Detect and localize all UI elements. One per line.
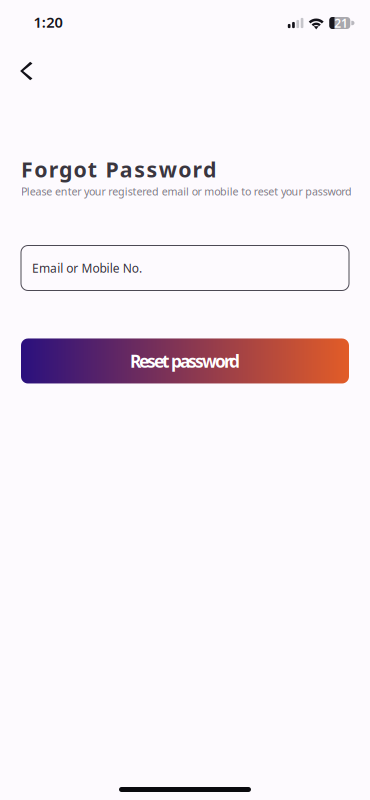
- staticText: Email or Mobile No.: [32, 260, 142, 276]
- staticText: 21: [334, 15, 348, 31]
- staticText: Forgot Password: [21, 155, 216, 183]
- button[interactable]: Back: [9, 54, 43, 88]
- staticText: Reset password: [130, 349, 240, 372]
- staticText: 1:20: [33, 12, 62, 32]
- staticText: Please enter your registered email or mo…: [21, 184, 352, 198]
- button[interactable]: Reset password: [21, 338, 349, 383]
